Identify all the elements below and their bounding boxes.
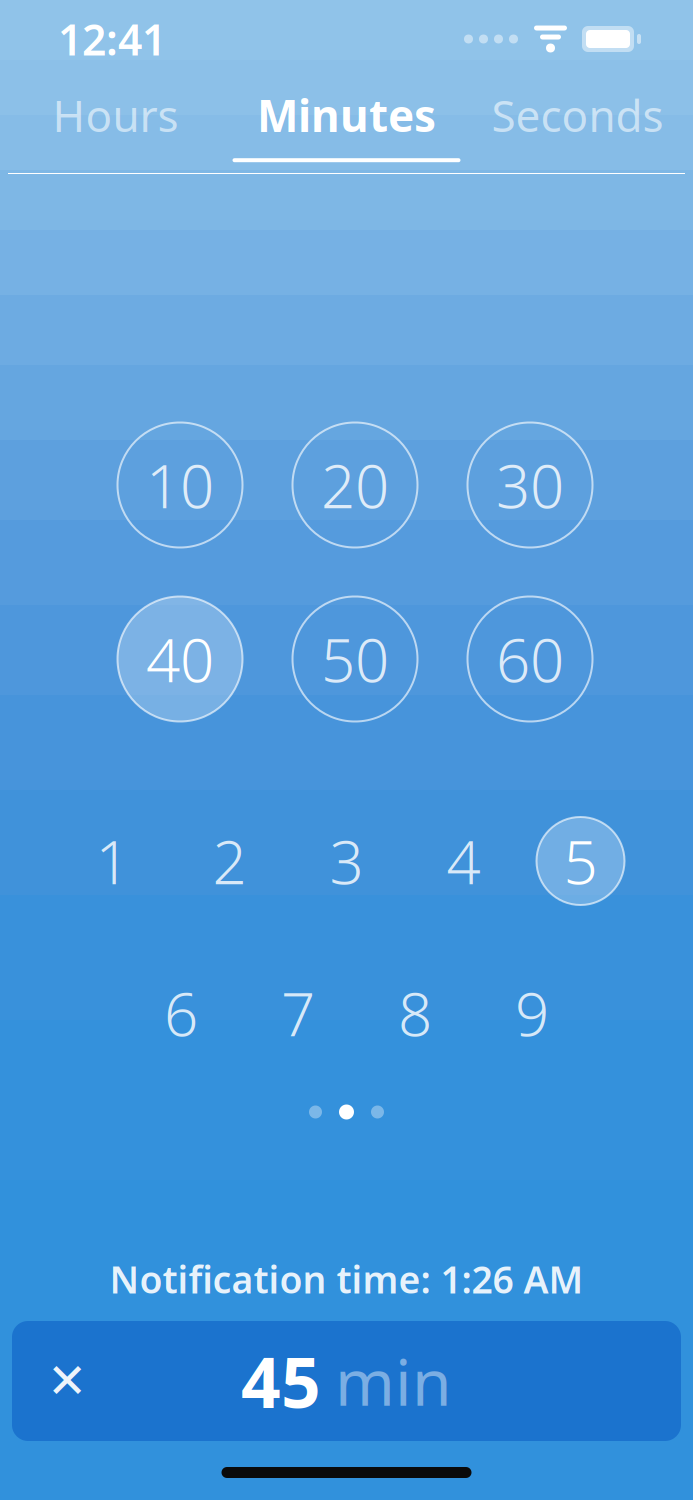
button[interactable]: 9 bbox=[488, 969, 576, 1057]
staticText: 10 bbox=[146, 445, 214, 525]
staticText: 7 bbox=[281, 973, 315, 1053]
staticText: Seconds bbox=[491, 86, 663, 144]
button[interactable]: Seconds bbox=[462, 78, 693, 174]
button[interactable]: 40 bbox=[117, 596, 243, 722]
staticText: 12:41 bbox=[58, 11, 166, 67]
button[interactable]: 10 bbox=[117, 422, 243, 548]
staticText: 45 bbox=[241, 1335, 321, 1427]
button[interactable]: 20 bbox=[292, 422, 418, 548]
staticText: 20 bbox=[321, 445, 389, 525]
button[interactable]: 50 bbox=[292, 596, 418, 722]
button[interactable]: Hours bbox=[0, 78, 231, 174]
staticText: 1 bbox=[95, 821, 129, 901]
staticText: 4 bbox=[446, 821, 480, 901]
button[interactable]: 3 bbox=[302, 817, 390, 905]
button[interactable]: 6 bbox=[137, 969, 225, 1057]
button[interactable]: Cancel timer bbox=[12, 1321, 122, 1441]
staticText: 2 bbox=[212, 821, 246, 901]
button[interactable]: Minutes bbox=[231, 78, 462, 174]
staticText: ✕ bbox=[47, 1354, 87, 1408]
staticText: 3 bbox=[329, 821, 363, 901]
button[interactable]: 30 bbox=[467, 422, 593, 548]
button[interactable]: 4 bbox=[419, 817, 507, 905]
button[interactable]: 8 bbox=[371, 969, 459, 1057]
staticText: 30 bbox=[496, 445, 564, 525]
staticText: 40 bbox=[146, 619, 214, 699]
button[interactable]: 60 bbox=[467, 596, 593, 722]
button[interactable]: 7 bbox=[254, 969, 342, 1057]
staticText: 9 bbox=[515, 973, 549, 1053]
staticText: Notification time: 1:26 AM bbox=[109, 1254, 583, 1304]
button[interactable]: 2 bbox=[185, 817, 273, 905]
button[interactable]: 1 bbox=[68, 817, 156, 905]
button[interactable]: 45 bbox=[181, 1321, 511, 1441]
staticText: 50 bbox=[321, 619, 389, 699]
staticText: 60 bbox=[496, 619, 564, 699]
button[interactable]: 5 bbox=[536, 817, 624, 905]
staticText: 6 bbox=[164, 973, 198, 1053]
staticText: Hours bbox=[52, 86, 178, 144]
staticText: 8 bbox=[398, 973, 432, 1053]
staticText: Minutes bbox=[257, 86, 436, 144]
staticText: 5 bbox=[563, 821, 597, 901]
staticText: min bbox=[335, 1338, 452, 1423]
